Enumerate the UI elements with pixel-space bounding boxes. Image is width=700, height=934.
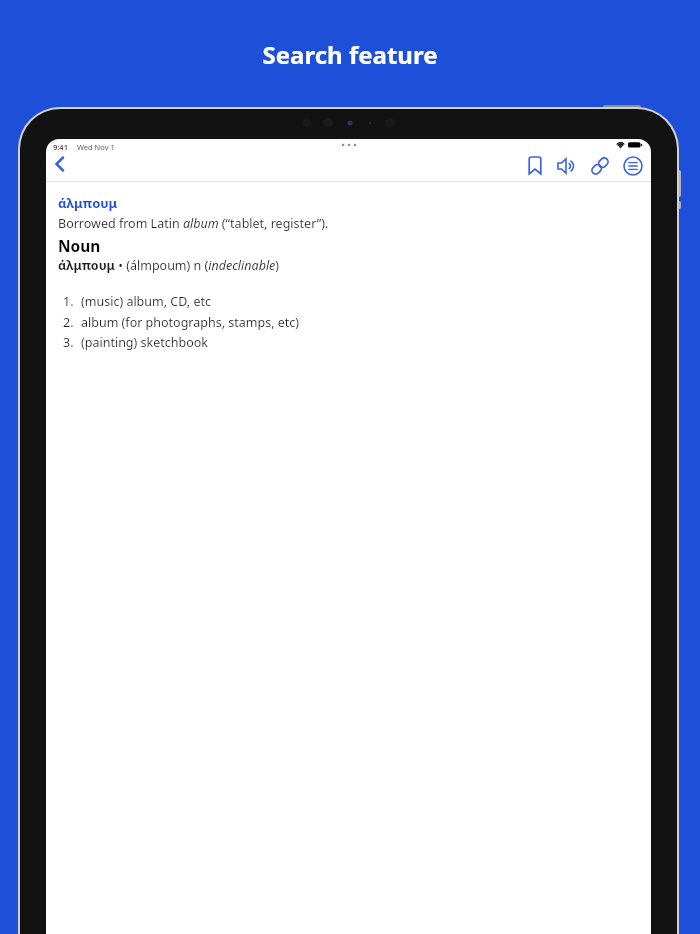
staticText: Search feature: [0, 38, 700, 71]
button[interactable]: [50, 153, 74, 179]
staticText: album (for photographs, stamps, etc): [81, 314, 300, 331]
staticText: Wed Nov 1: [77, 142, 115, 152]
button[interactable]: [622, 155, 644, 177]
staticText: 1.: [63, 293, 74, 310]
staticText: 9:41: [53, 142, 68, 152]
staticText: Borrowed from Latin album (“tablet, regi…: [58, 215, 329, 232]
button[interactable]: [524, 155, 546, 177]
button[interactable]: [589, 155, 611, 177]
button[interactable]: άλμπουμ: [58, 194, 118, 212]
staticText: Noun: [58, 235, 101, 256]
staticText: (music) album, CD, etc: [81, 293, 212, 310]
staticText: 2.: [63, 314, 74, 331]
button[interactable]: [556, 155, 578, 177]
staticText: άλμπουμ • (álmpoum) n (indeclinable): [58, 257, 280, 274]
staticText: 3.: [63, 334, 74, 351]
staticText: (painting) sketchbook: [81, 334, 208, 351]
